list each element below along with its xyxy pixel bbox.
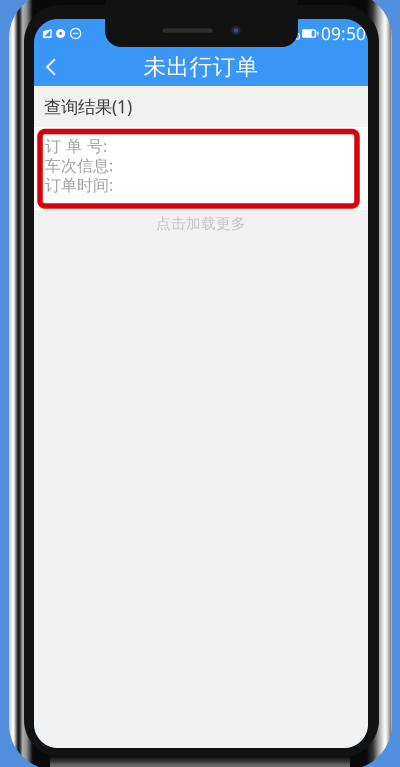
button[interactable]: 点击加载更多 xyxy=(34,210,368,237)
staticText: 订 单 号: xyxy=(45,135,107,156)
staticText: 车次信息: xyxy=(45,155,113,176)
button[interactable]: 订 单 号: xyxy=(34,127,368,210)
staticText: 订单时间: xyxy=(45,174,113,195)
button[interactable]: Back xyxy=(34,48,68,86)
staticText: 点击加载更多 xyxy=(156,214,246,232)
staticText: 09:50 xyxy=(321,22,366,45)
staticText: 查询结果(1) xyxy=(44,95,132,118)
staticText: 73% xyxy=(270,23,301,44)
staticText: 未出行订单 xyxy=(143,53,258,81)
